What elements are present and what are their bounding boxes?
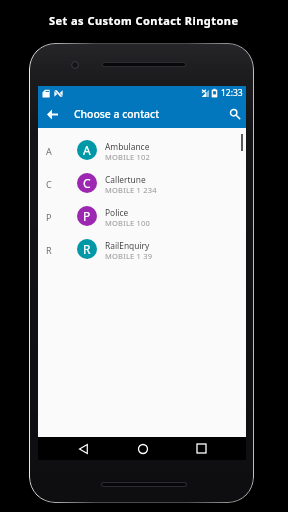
staticText: MOBILE 102 [105,152,150,162]
button[interactable]: Recent apps [190,437,213,460]
staticText: MOBILE 100 [105,218,150,228]
staticText: Ambulance [105,141,150,152]
staticText: RailEnquiry [105,240,150,251]
staticText: P [83,208,91,224]
staticText: 12:33 [221,87,243,99]
button[interactable]: P [38,199,246,232]
staticText: A [46,145,52,157]
staticText: R [46,244,52,256]
staticText: A [83,142,91,158]
button[interactable]: A [38,133,246,166]
staticText: Callertune [105,174,146,185]
staticText: MOBILE 1 234 [105,185,157,195]
staticText: C [83,175,91,191]
button[interactable]: Home [131,437,154,460]
staticText: Choose a contact [74,107,160,121]
staticText: MOBILE 1 39 [105,251,153,261]
button[interactable]: Back [72,437,95,460]
staticText: P [46,211,52,223]
staticText: Police [105,207,129,218]
button[interactable]: R [38,232,246,265]
staticText: R [83,241,91,257]
button[interactable]: C [38,166,246,199]
staticText: C [46,178,52,190]
button[interactable]: Search [224,100,246,128]
staticText: Set as Custom Contact Ringtone [49,13,239,28]
button[interactable]: Navigate up [38,100,66,128]
